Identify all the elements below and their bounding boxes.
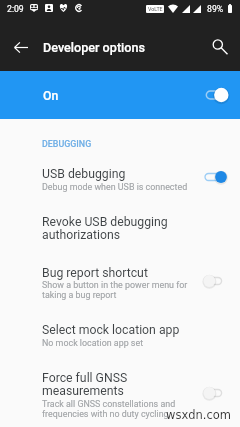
staticText: USB debugging xyxy=(42,167,188,181)
button[interactable] xyxy=(0,312,240,350)
staticText: Select mock location app xyxy=(42,323,188,337)
staticText: 2:09 xyxy=(7,4,24,14)
button[interactable] xyxy=(0,255,240,292)
staticText: 89% xyxy=(207,4,224,14)
staticText: Debug mode when USB is connected xyxy=(42,182,188,192)
button[interactable]: Navigate up xyxy=(6,33,35,62)
button[interactable]: Search xyxy=(198,30,230,62)
staticText: Force full GNSS measurements xyxy=(42,371,188,398)
staticText: Track all GNSS constellations and freque… xyxy=(42,399,188,419)
staticText: On xyxy=(43,89,59,103)
staticText: wsxdn.com xyxy=(166,408,232,421)
button[interactable] xyxy=(0,156,240,194)
button[interactable]: On xyxy=(0,71,240,119)
staticText: DEBUGGING xyxy=(42,139,92,149)
staticText: No mock location app set xyxy=(42,338,188,348)
staticText: Show a button in the power menu for taki… xyxy=(42,280,188,300)
button[interactable] xyxy=(0,204,240,241)
staticText: Revoke USB debugging authorizations xyxy=(42,215,188,242)
staticText: VoLTE xyxy=(148,6,163,12)
staticText: Developer options xyxy=(43,40,145,55)
staticText: Bug report shortcut xyxy=(42,266,188,280)
button[interactable] xyxy=(0,360,240,411)
